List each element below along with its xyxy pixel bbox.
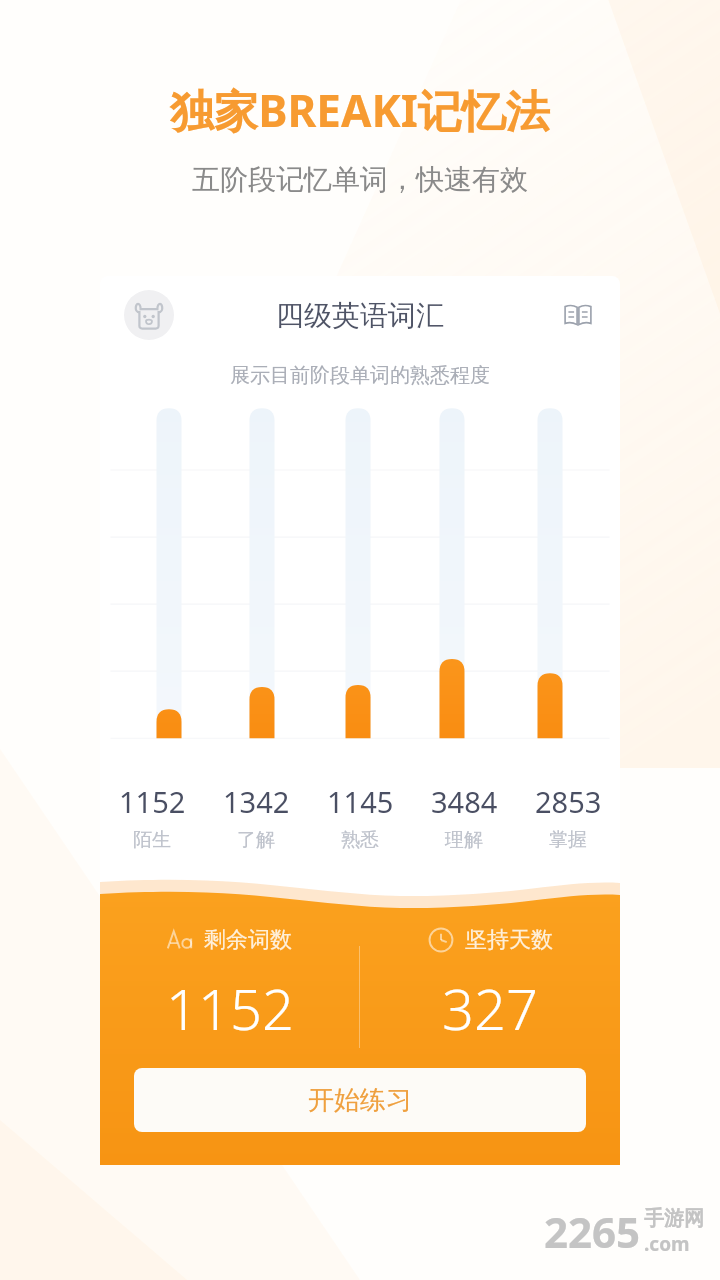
staticText: 手游网 bbox=[644, 1206, 704, 1231]
staticText: 327 bbox=[442, 970, 538, 1046]
staticText: 五阶段记忆单词，快速有效 bbox=[192, 162, 528, 197]
staticText: 展示目前阶段单词的熟悉程度 bbox=[230, 363, 490, 388]
staticText: 1145 bbox=[327, 782, 394, 821]
button[interactable]: Dictionary bbox=[556, 293, 600, 337]
staticText: 陌生 bbox=[133, 828, 171, 852]
staticText: 理解 bbox=[445, 828, 483, 852]
staticText: 2265 bbox=[544, 1203, 641, 1260]
staticText: 1342 bbox=[223, 782, 290, 821]
button[interactable]: Profile avatar bbox=[124, 290, 174, 340]
staticText: .com bbox=[644, 1231, 690, 1257]
staticText: 坚持天数 bbox=[465, 926, 553, 954]
staticText: 2853 bbox=[535, 782, 602, 821]
staticText: 剩余词数 bbox=[204, 926, 292, 954]
button[interactable]: 开始练习 bbox=[134, 1068, 586, 1132]
staticText: 3484 bbox=[431, 782, 498, 821]
staticText: 四级英语词汇 bbox=[276, 298, 444, 333]
staticText: 掌握 bbox=[549, 828, 587, 852]
staticText: 开始练习 bbox=[308, 1084, 412, 1117]
staticText: 1152 bbox=[119, 782, 186, 821]
staticText: 了解 bbox=[237, 828, 275, 852]
staticText: 熟悉 bbox=[341, 828, 379, 852]
staticText: 1152 bbox=[166, 970, 294, 1046]
staticText: 独家BREAKI记忆法 bbox=[170, 80, 550, 140]
